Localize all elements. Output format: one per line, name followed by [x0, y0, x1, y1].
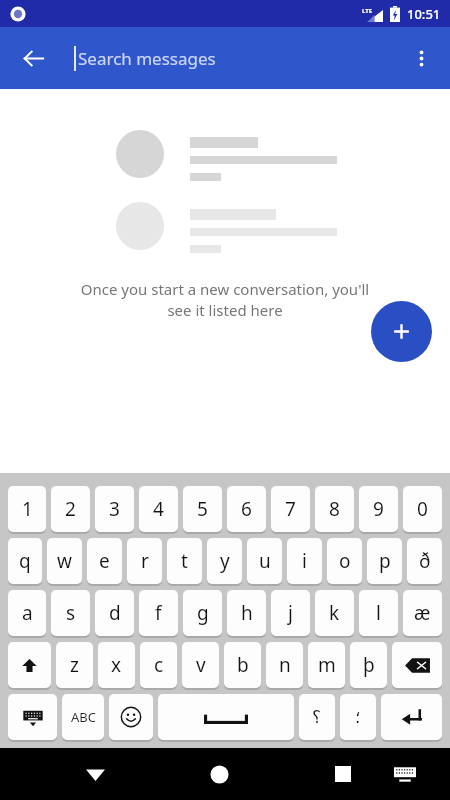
button[interactable]: Space: [158, 694, 294, 740]
staticText: i: [302, 548, 307, 574]
staticText: p: [379, 548, 391, 574]
button[interactable]: i: [287, 538, 322, 584]
staticText: ؛: [355, 707, 361, 727]
button[interactable]: e: [87, 538, 122, 584]
staticText: l: [376, 600, 381, 626]
staticText: 8: [329, 496, 340, 522]
button[interactable]: r: [127, 538, 162, 584]
staticText: 7: [285, 496, 296, 522]
staticText: y: [220, 548, 230, 574]
button[interactable]: z: [56, 642, 93, 688]
button[interactable]: More options: [397, 34, 445, 82]
button[interactable]: 7: [271, 486, 310, 532]
staticText: Search messages: [78, 47, 216, 70]
staticText: o: [339, 548, 351, 574]
button[interactable]: Back: [75, 754, 115, 794]
button[interactable]: d: [95, 590, 134, 636]
button[interactable]: n: [266, 642, 303, 688]
button[interactable]: 9: [359, 486, 398, 532]
staticText: u: [259, 548, 271, 574]
button[interactable]: Recents: [323, 754, 363, 794]
button[interactable]: t: [167, 538, 202, 584]
button[interactable]: 3: [95, 486, 134, 532]
button[interactable]: b: [224, 642, 261, 688]
staticText: n: [279, 652, 291, 678]
button[interactable]: Emoji: [109, 694, 153, 740]
button[interactable]: j: [271, 590, 310, 636]
staticText: k: [329, 600, 340, 626]
staticText: 3: [109, 496, 120, 522]
button[interactable]: æ: [403, 590, 442, 636]
button[interactable]: x: [98, 642, 135, 688]
staticText: 9: [373, 496, 384, 522]
button[interactable]: 5: [183, 486, 222, 532]
button[interactable]: v: [182, 642, 219, 688]
button[interactable]: 6: [227, 486, 266, 532]
staticText: q: [19, 548, 31, 574]
button[interactable]: c: [140, 642, 177, 688]
staticText: h: [241, 600, 253, 626]
staticText: 4: [153, 496, 164, 522]
button[interactable]: l: [359, 590, 398, 636]
button[interactable]: w: [47, 538, 82, 584]
staticText: v: [196, 652, 206, 678]
button[interactable]: u: [247, 538, 282, 584]
button[interactable]: New conversation: [371, 301, 432, 362]
button[interactable]: ð: [407, 538, 442, 584]
button[interactable]: ؛: [340, 694, 376, 740]
button[interactable]: 2: [51, 486, 90, 532]
button[interactable]: a: [8, 590, 46, 636]
staticText: g: [197, 600, 209, 626]
staticText: ؟: [312, 707, 322, 727]
staticText: w: [57, 548, 72, 574]
staticText: b: [237, 652, 249, 678]
button[interactable]: f: [139, 590, 178, 636]
button[interactable]: Enter: [381, 694, 442, 740]
button[interactable]: p: [367, 538, 402, 584]
staticText: e: [99, 548, 110, 574]
staticText: c: [154, 652, 164, 678]
button[interactable]: Search messages: [74, 27, 216, 89]
button[interactable]: Shift: [8, 642, 51, 688]
button[interactable]: y: [207, 538, 242, 584]
button[interactable]: Switch keyboard: [8, 694, 57, 740]
staticText: a: [22, 600, 33, 626]
button[interactable]: Home: [199, 754, 239, 794]
button[interactable]: Switch keyboard: [385, 754, 425, 794]
staticText: z: [70, 652, 79, 678]
staticText: 10:51: [407, 5, 441, 23]
button[interactable]: o: [327, 538, 362, 584]
staticText: ABC: [71, 708, 96, 726]
button[interactable]: m: [308, 642, 345, 688]
button[interactable]: Back: [9, 34, 57, 82]
button[interactable]: 1: [8, 486, 46, 532]
staticText: 1: [22, 496, 33, 522]
button[interactable]: þ: [350, 642, 387, 688]
button[interactable]: q: [8, 538, 42, 584]
button[interactable]: s: [51, 590, 90, 636]
staticText: Once you start a new conversation, you'l…: [30, 279, 420, 321]
staticText: 6: [241, 496, 252, 522]
button[interactable]: ABC: [62, 694, 104, 740]
staticText: f: [155, 600, 162, 626]
staticText: x: [111, 652, 122, 678]
staticText: 5: [197, 496, 208, 522]
button[interactable]: 0: [403, 486, 442, 532]
staticText: æ: [414, 600, 431, 626]
staticText: r: [141, 548, 149, 574]
staticText: m: [318, 652, 336, 678]
button[interactable]: k: [315, 590, 354, 636]
button[interactable]: 4: [139, 486, 178, 532]
staticText: þ: [363, 652, 375, 678]
staticText: 0: [417, 496, 428, 522]
staticText: s: [66, 600, 76, 626]
button[interactable]: ؟: [299, 694, 335, 740]
staticText: LTE: [362, 7, 373, 15]
button[interactable]: 8: [315, 486, 354, 532]
button[interactable]: g: [183, 590, 222, 636]
staticText: 2: [65, 496, 76, 522]
staticText: ð: [419, 548, 431, 574]
button[interactable]: Backspace: [392, 642, 442, 688]
staticText: j: [288, 600, 293, 626]
button[interactable]: h: [227, 590, 266, 636]
